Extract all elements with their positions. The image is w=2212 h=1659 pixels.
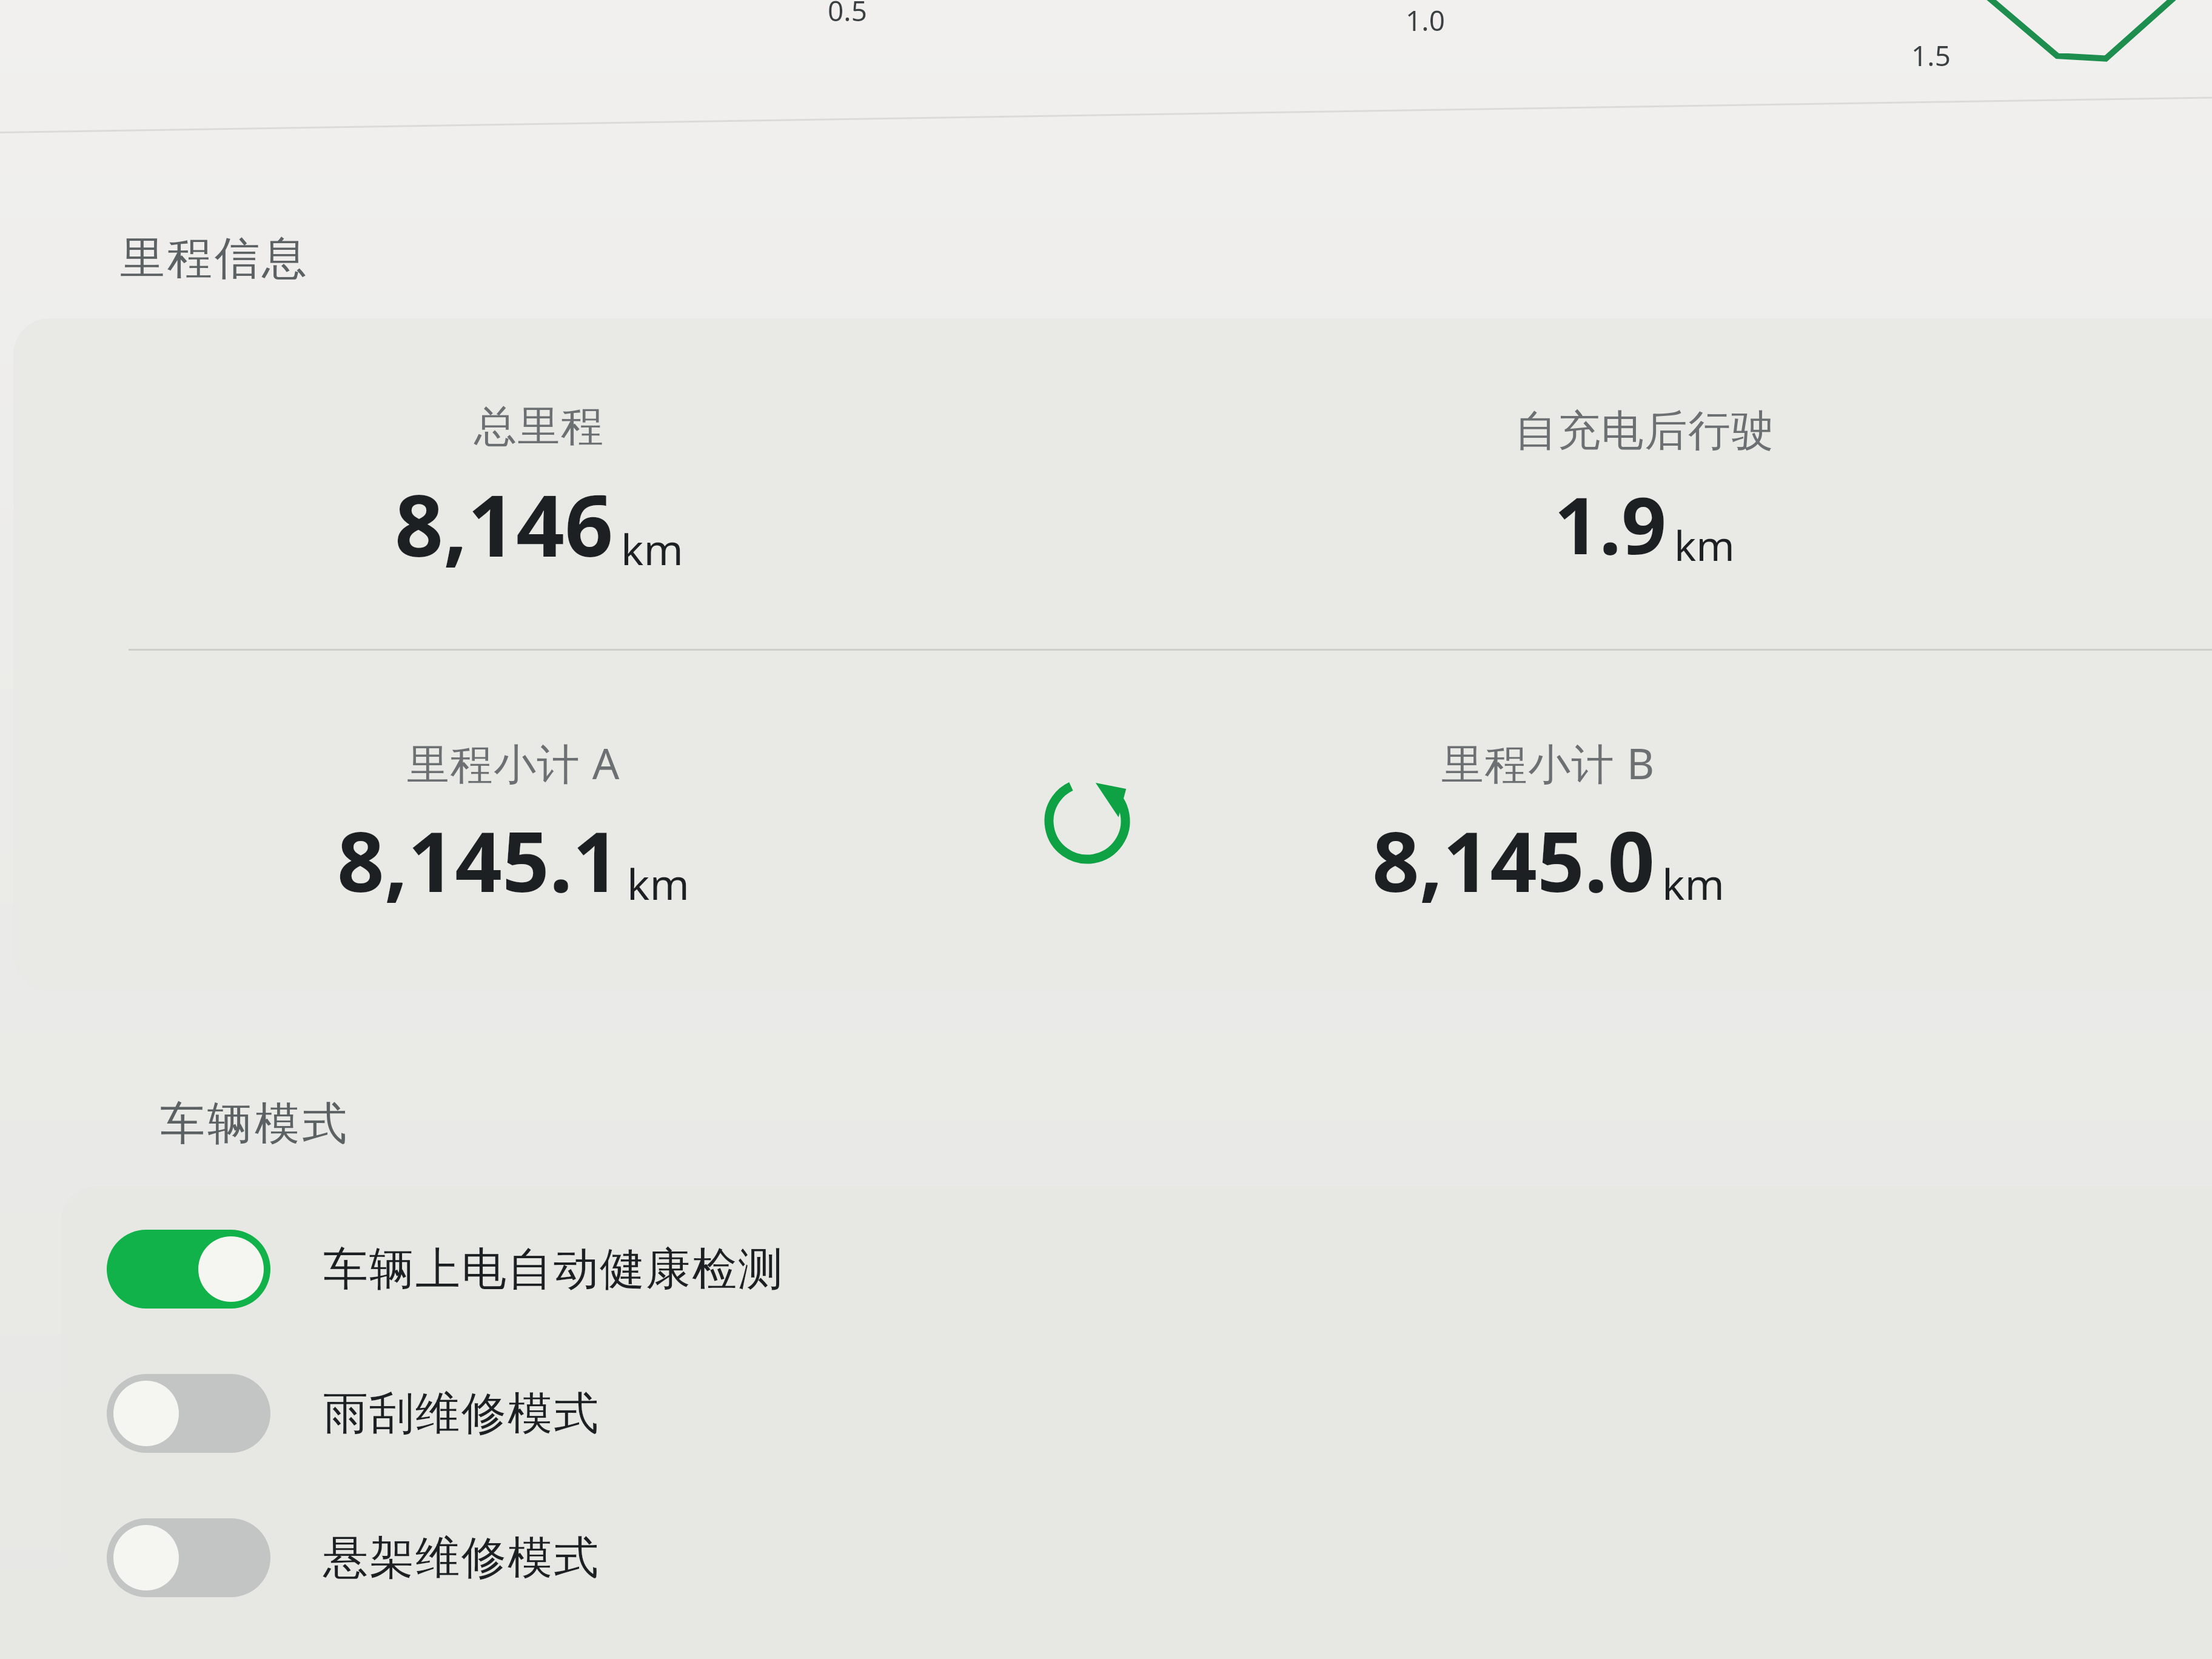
- staticText: 8,145.0: [1372, 804, 1655, 916]
- staticText: 总里程: [474, 400, 605, 454]
- staticText: 8,145.1: [337, 804, 620, 916]
- staticText: km: [1662, 854, 1724, 912]
- staticText: 里程小计 B: [1441, 734, 1655, 792]
- staticText: 8,146: [395, 466, 614, 581]
- staticText: km: [627, 854, 689, 912]
- staticText: 车辆模式: [159, 1096, 348, 1152]
- button[interactable]: 里程小计 A: [13, 651, 984, 991]
- staticText: 自充电后行驶: [1514, 404, 1774, 458]
- staticText: km: [621, 520, 683, 577]
- staticText: km: [1674, 517, 1735, 573]
- staticText: 里程信息: [119, 230, 308, 287]
- button[interactable]: 雨刮维修模式: [61, 1368, 2212, 1459]
- button[interactable]: 自充电后行驶: [1113, 318, 2212, 649]
- staticText: 1.5: [1911, 36, 1951, 75]
- staticText: 0.5: [828, 0, 867, 30]
- button[interactable]: 车辆上电自动健康检测: [61, 1224, 2212, 1315]
- staticText: 1.0: [1406, 1, 1445, 39]
- staticText: 悬架维修模式: [323, 1530, 599, 1586]
- button[interactable]: 里程小计 B: [1190, 651, 2212, 991]
- button[interactable]: 总里程: [13, 318, 1113, 649]
- staticText: 1.9: [1554, 470, 1667, 577]
- staticText: 雨刮维修模式: [323, 1386, 599, 1442]
- button[interactable]: Reset trip meter A: [984, 651, 1190, 991]
- staticText: 车辆上电自动健康检测: [323, 1241, 783, 1298]
- staticText: 里程小计 A: [407, 734, 620, 792]
- button[interactable]: 悬架维修模式: [61, 1512, 2212, 1603]
